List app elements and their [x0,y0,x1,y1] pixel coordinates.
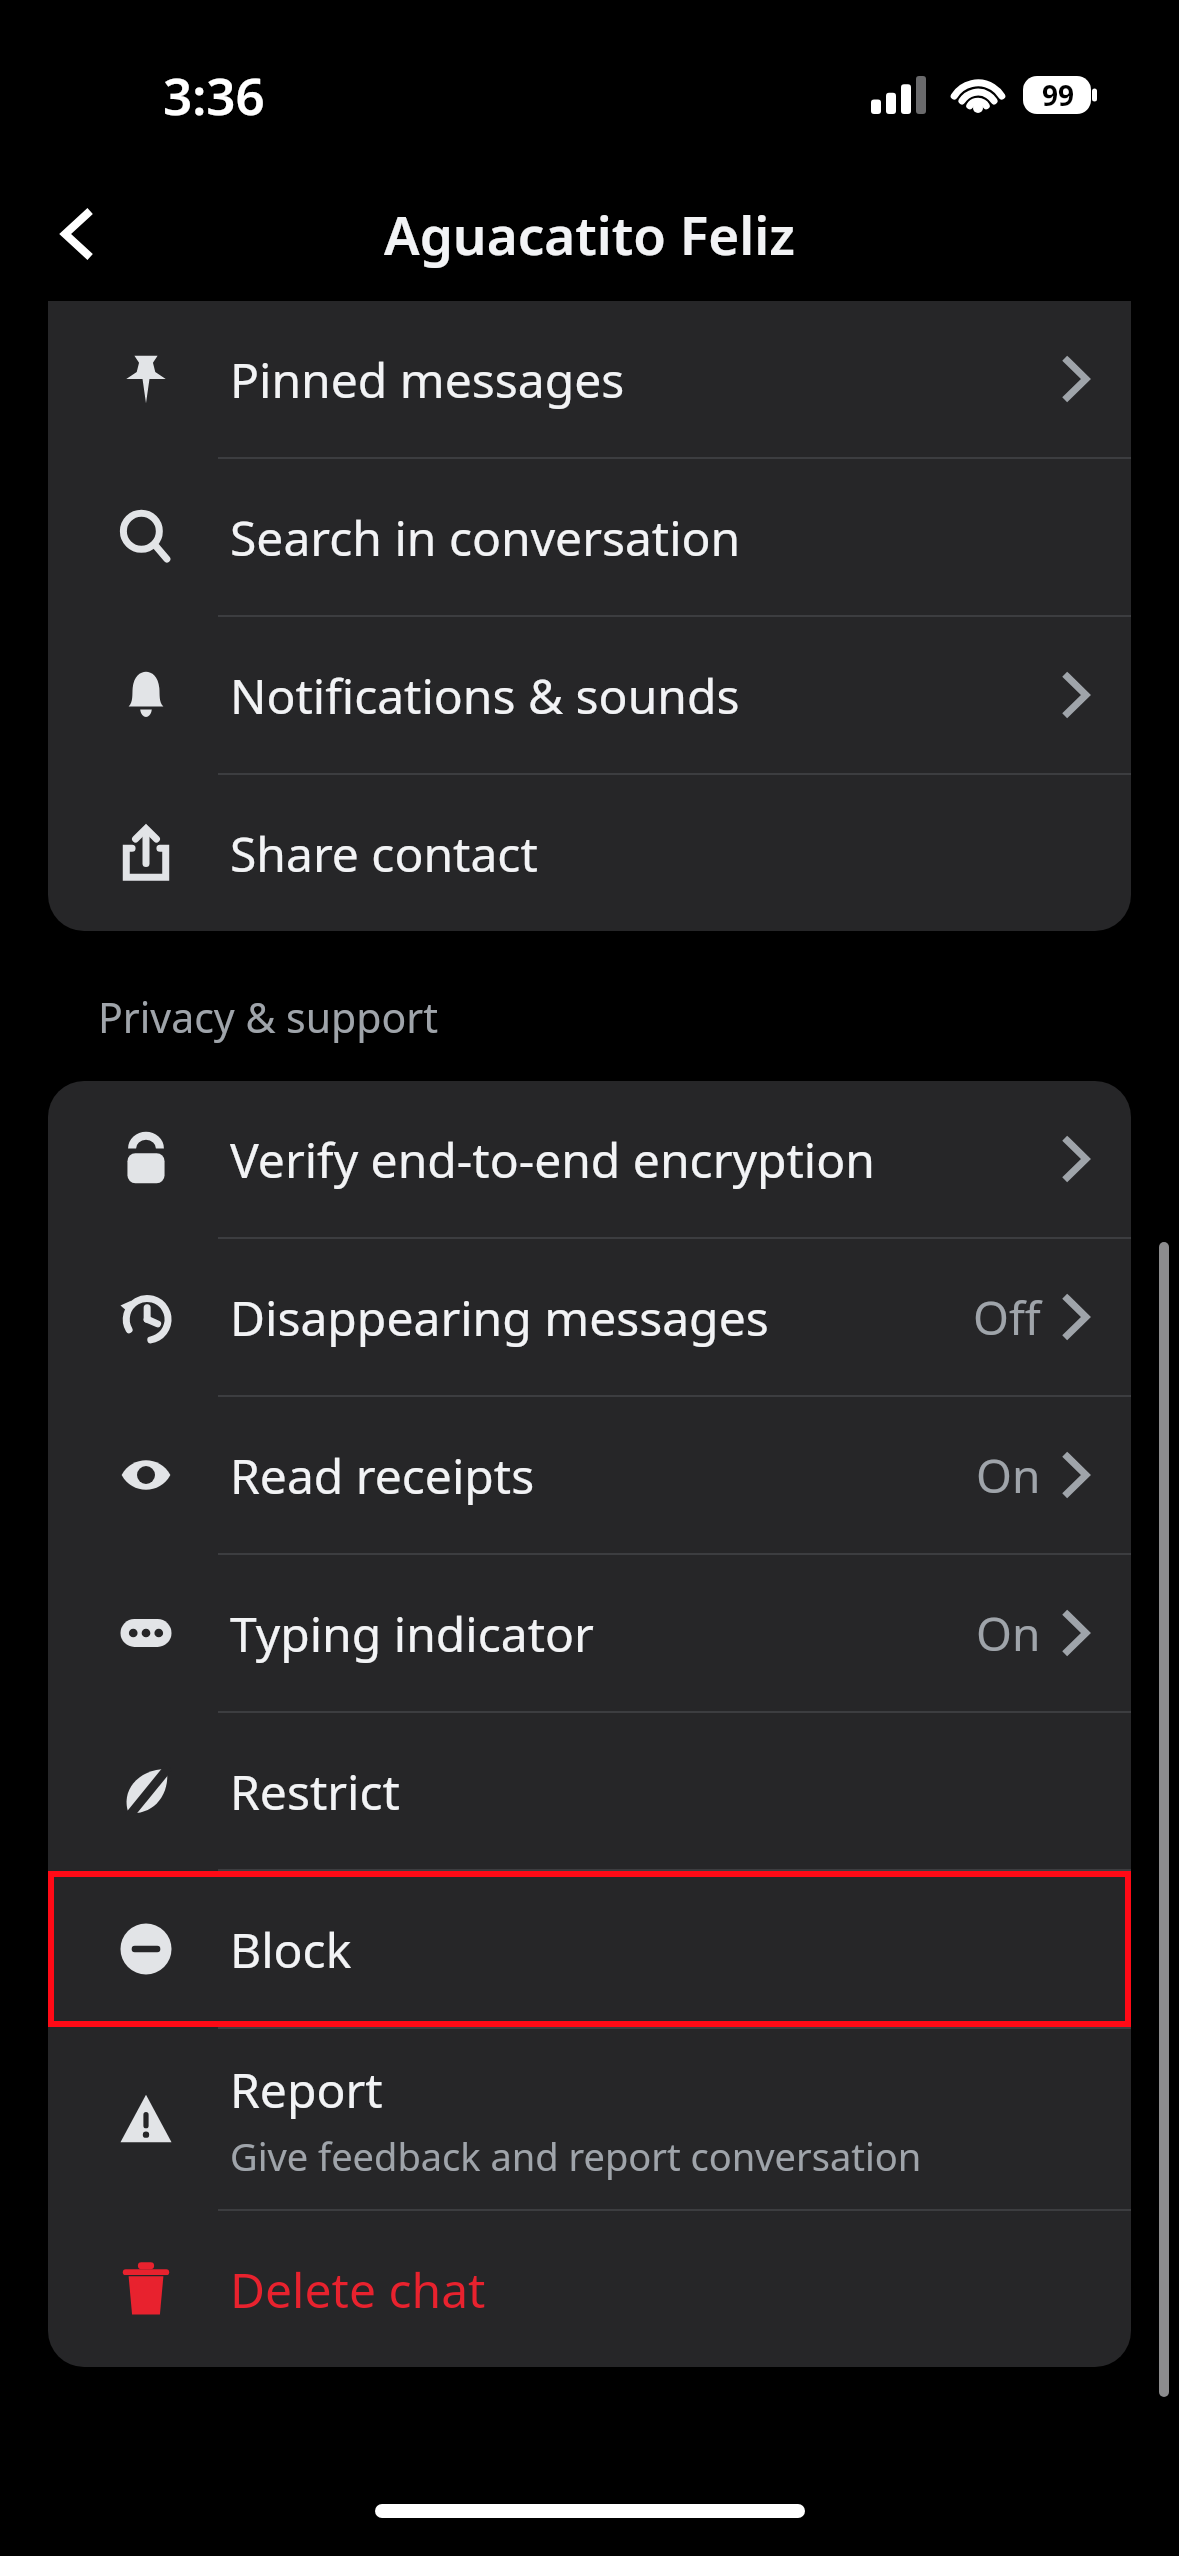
staticText: Disappearing messages [230,1285,973,1350]
staticText: Delete chat [230,2257,1091,2322]
button[interactable]: Typing indicator [48,1555,1131,1711]
button[interactable]: Back [30,186,126,282]
staticText: 99 [1042,76,1075,114]
button[interactable]: Delete chat [48,2211,1131,2367]
staticText: Restrict [230,1759,1091,1824]
staticText: Aguacatito Feliz [384,198,795,270]
staticText: Privacy & support [98,989,439,1045]
button[interactable]: Notifications & sounds [48,617,1131,773]
staticText: Give feedback and report conversation [230,2130,922,2182]
button[interactable]: Restrict [48,1713,1131,1869]
staticText: Share contact [230,821,1091,886]
button[interactable]: Read receipts [48,1397,1131,1553]
staticText: Pinned messages [230,347,1063,412]
staticText: Search in conversation [230,505,1091,570]
staticText: Verify end-to-end encryption [230,1127,1063,1192]
button[interactable]: Search in conversation [48,459,1131,615]
staticText: Block [230,1917,1091,1982]
button[interactable]: Share contact [48,775,1131,931]
staticText: Typing indicator [230,1601,976,1666]
staticText: On [976,1444,1041,1507]
staticText: Notifications & sounds [230,663,1063,728]
staticText: Report [230,2057,383,2122]
staticText: Read receipts [230,1443,976,1508]
button[interactable]: Pinned messages [48,301,1131,457]
staticText: 3:36 [163,60,265,129]
staticText: Off [973,1286,1041,1349]
button[interactable]: Verify end-to-end encryption [48,1081,1131,1237]
button[interactable]: Report [48,2029,1131,2209]
button[interactable]: Disappearing messages [48,1239,1131,1395]
button[interactable]: Block [48,1871,1131,2027]
staticText: On [976,1602,1041,1665]
